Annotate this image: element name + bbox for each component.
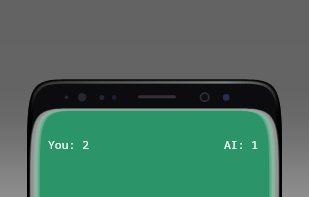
button[interactable]: You: 2 bbox=[48, 137, 90, 153]
button[interactable]: AI: 1 bbox=[224, 137, 259, 153]
